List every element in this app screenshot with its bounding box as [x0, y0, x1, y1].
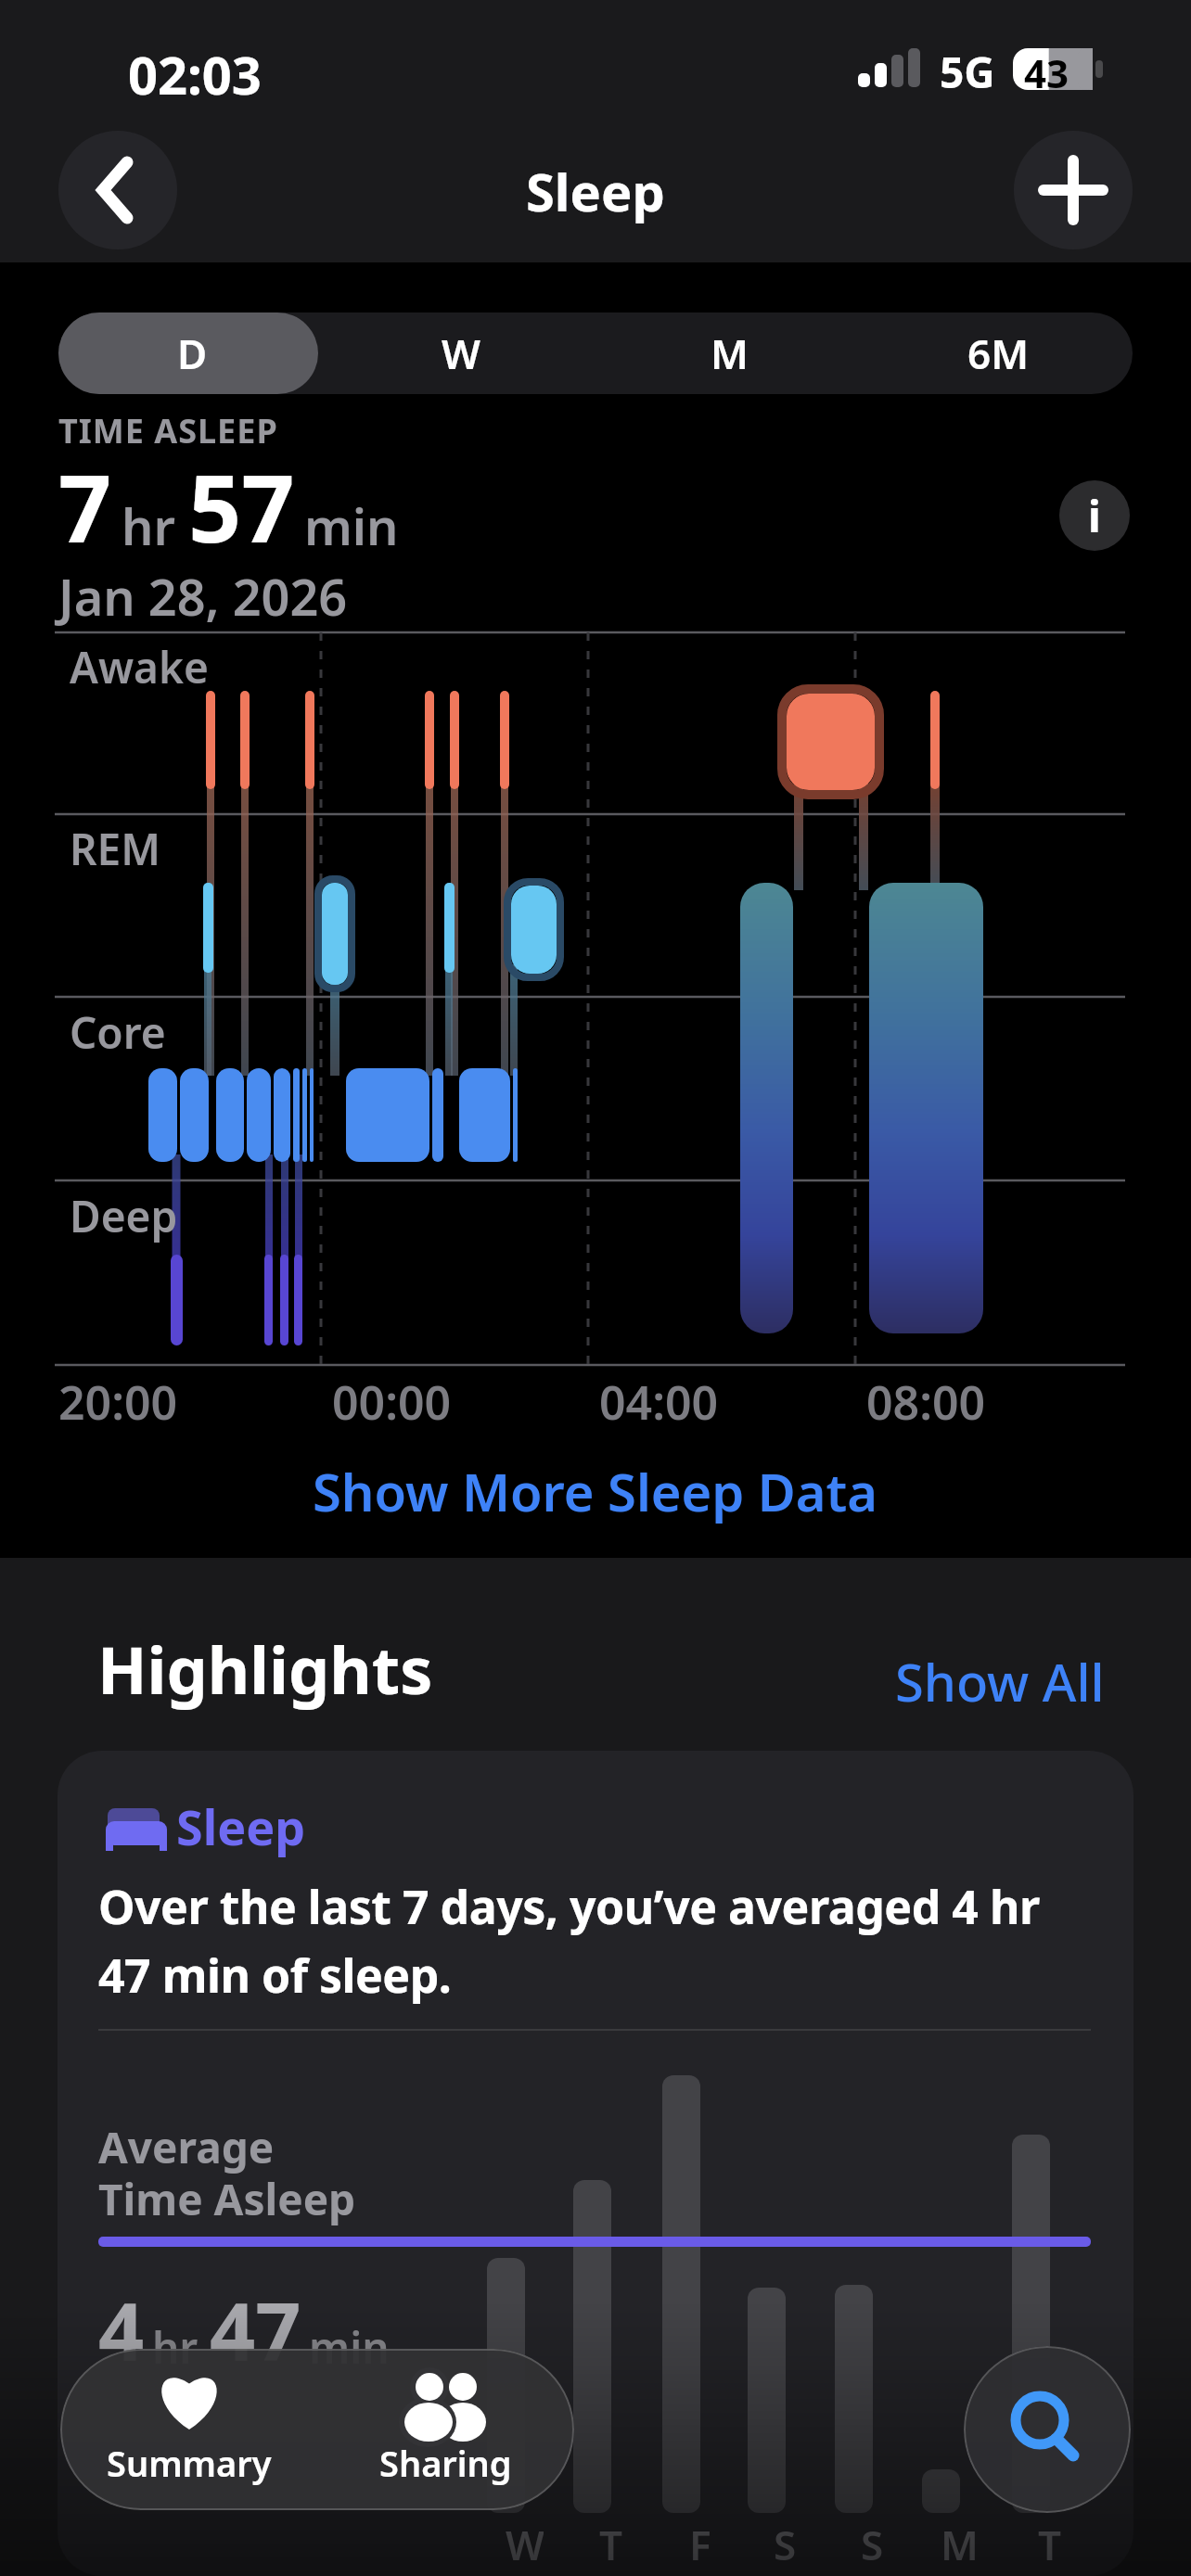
staticText: S [774, 2517, 797, 2563]
staticText: REM [70, 820, 160, 878]
staticText: 43 [1024, 46, 1069, 99]
staticText: hr [122, 491, 175, 560]
staticText: 00:00 [332, 1371, 452, 1434]
staticText: Time Asleep [98, 2170, 356, 2228]
button[interactable]: Summary [60, 2349, 317, 2510]
staticText: Core [70, 1003, 166, 1062]
button[interactable] [964, 2346, 1131, 2513]
staticText: M [711, 325, 749, 381]
staticText: 57 [188, 443, 295, 569]
button[interactable]: Sharing [317, 2349, 574, 2510]
staticText: 7 [58, 443, 112, 569]
button[interactable]: D [58, 312, 327, 394]
staticText: W [442, 325, 480, 381]
staticText: Summary [107, 2439, 272, 2487]
staticText: Deep [70, 1187, 178, 1245]
staticText: Over the last 7 days, you’ve averaged 4 … [98, 1875, 1040, 1938]
staticText: i [1088, 487, 1101, 545]
staticText: Sharing [379, 2439, 512, 2487]
staticText: TIME ASLEEP [58, 408, 278, 453]
staticText: Sleep [526, 156, 665, 226]
staticText: Sleep [176, 1793, 306, 1859]
button[interactable]: M [595, 312, 864, 394]
staticText: 20:00 [58, 1371, 178, 1434]
button[interactable]: W [327, 312, 595, 394]
staticText: S [861, 2517, 884, 2563]
button[interactable] [58, 131, 177, 249]
staticText: 08:00 [866, 1371, 986, 1434]
staticText: 4 [98, 2276, 145, 2384]
button[interactable]: Show More Sleep Data [0, 1456, 1191, 1526]
staticText: T [1038, 2517, 1062, 2563]
button[interactable]: Sleep [58, 1751, 1133, 2576]
staticText: hr [152, 2318, 198, 2377]
button[interactable]: 6M [864, 312, 1133, 394]
staticText: Highlights [97, 1625, 433, 1713]
staticText: Awake [70, 638, 209, 696]
staticText: T [599, 2517, 623, 2563]
staticText: Average [98, 2118, 275, 2176]
staticText: Jan 28, 2026 [58, 562, 348, 631]
button[interactable] [1014, 131, 1133, 249]
staticText: Show More Sleep Data [313, 1456, 878, 1526]
staticText: min [309, 2318, 390, 2377]
staticText: 6M [967, 325, 1030, 381]
button[interactable]: i [1059, 480, 1130, 551]
staticText: 02:03 [128, 39, 262, 109]
staticText: D [177, 325, 208, 381]
staticText: Show All [895, 1646, 1105, 1716]
staticText: 47 min of sleep. [98, 1944, 452, 2007]
button[interactable]: Show All [895, 1646, 1105, 1716]
staticText: 04:00 [599, 1371, 719, 1434]
staticText: 47 [210, 2276, 301, 2384]
staticText: M [941, 2517, 979, 2563]
staticText: 5G [940, 43, 995, 101]
staticText: W [506, 2517, 544, 2563]
staticText: F [689, 2517, 711, 2563]
staticText: min [304, 491, 399, 560]
